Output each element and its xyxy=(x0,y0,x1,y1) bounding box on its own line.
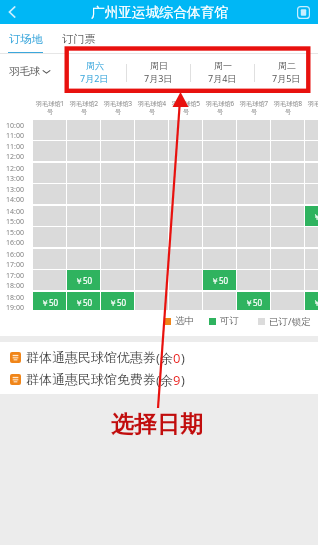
button[interactable]: ￥50 xyxy=(67,270,100,290)
button[interactable]: 群体通惠民球馆免费券 xyxy=(0,370,318,389)
button[interactable] xyxy=(169,227,202,247)
button[interactable] xyxy=(169,163,202,183)
button[interactable] xyxy=(135,270,168,290)
button[interactable]: ￥50 xyxy=(101,292,134,310)
staticText: 17:00 xyxy=(6,271,24,281)
button[interactable] xyxy=(169,249,202,269)
button[interactable]: Menu xyxy=(293,2,313,22)
button[interactable]: ￥50 xyxy=(203,270,236,290)
button[interactable]: Back xyxy=(0,0,24,24)
button[interactable]: ￥50 xyxy=(67,292,100,310)
button[interactable] xyxy=(169,206,202,226)
staticText: 7月5日 xyxy=(272,72,301,84)
button[interactable]: 订场地 xyxy=(2,24,51,54)
button[interactable]: ￥50 xyxy=(33,292,66,310)
staticText: 羽毛球馆7号 xyxy=(239,99,269,116)
button[interactable]: 群体通惠民球馆优惠券 xyxy=(0,348,318,367)
button[interactable]: ￥50 xyxy=(305,292,318,310)
button[interactable]: 订门票 xyxy=(51,24,107,54)
button[interactable]: 周六 xyxy=(63,54,126,92)
button[interactable]: 周一 xyxy=(191,54,254,92)
staticText: 14:00 xyxy=(6,195,24,205)
button[interactable] xyxy=(169,184,202,204)
staticText: 13:00 xyxy=(6,185,24,195)
button[interactable]: ￥50 xyxy=(305,206,318,226)
button[interactable]: 羽毛球 xyxy=(0,54,63,92)
button[interactable] xyxy=(169,141,202,161)
staticText: 羽毛球馆9号 xyxy=(307,99,318,116)
staticText: 可订 xyxy=(220,315,239,327)
button[interactable]: 周二 xyxy=(255,54,318,92)
button[interactable] xyxy=(135,249,168,269)
button[interactable]: ￥50 xyxy=(237,292,270,310)
button[interactable]: 周日 xyxy=(127,54,190,92)
staticText: 订场地 xyxy=(9,32,43,46)
button[interactable] xyxy=(169,120,202,140)
button[interactable] xyxy=(135,292,168,310)
